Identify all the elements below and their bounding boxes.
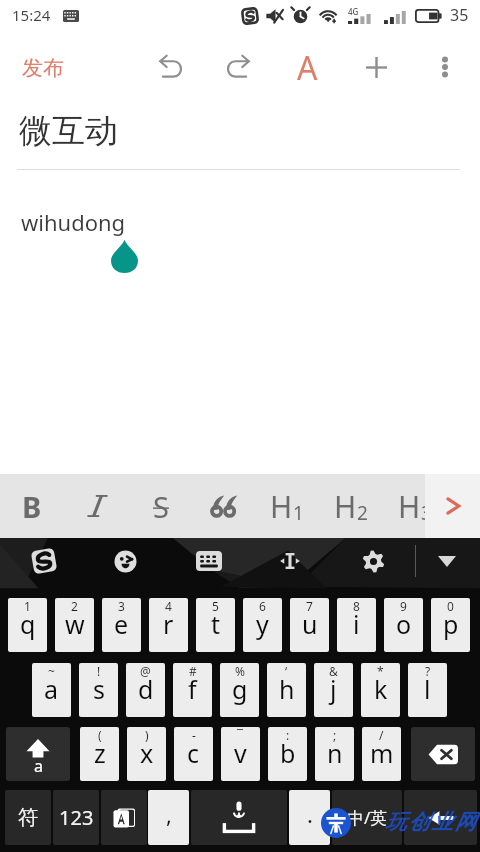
staticText: 玩创业网: [385, 809, 478, 835]
button[interactable]: Enter: [404, 790, 477, 845]
staticText: v: [234, 736, 247, 770]
button[interactable]: B: [2, 474, 62, 538]
button[interactable]: Redo: [214, 43, 262, 91]
button[interactable]: H: [385, 474, 445, 538]
button[interactable]: Space: [191, 790, 287, 845]
button[interactable]: H: [321, 474, 381, 538]
button[interactable]: 2: [55, 598, 94, 652]
staticText: e: [114, 607, 129, 641]
staticText: 3: [421, 500, 432, 526]
button[interactable]: %: [220, 663, 259, 717]
button[interactable]: 7: [290, 598, 329, 652]
staticText: z: [94, 736, 106, 770]
staticText: p: [443, 607, 459, 641]
button[interactable]: Switch language: [101, 790, 147, 845]
button[interactable]: ,: [148, 790, 189, 845]
staticText: 0: [447, 598, 454, 614]
button[interactable]: 符: [5, 790, 51, 845]
button[interactable]: /: [362, 727, 401, 781]
staticText: k: [374, 672, 388, 706]
button[interactable]: 1: [8, 598, 47, 652]
staticText: 中/英: [347, 806, 388, 829]
staticText: ‘: [285, 663, 288, 679]
button[interactable]: ¯: [221, 727, 260, 781]
button[interactable]: Delete: [411, 727, 475, 781]
button[interactable]: ): [127, 727, 166, 781]
staticText: 123: [59, 804, 94, 831]
button[interactable]: 5: [196, 598, 235, 652]
staticText: ,: [166, 799, 172, 829]
staticText: !: [97, 663, 101, 679]
button[interactable]: Add: [352, 43, 400, 91]
staticText: a: [34, 755, 43, 777]
button[interactable]: -: [174, 727, 213, 781]
staticText: 1: [24, 598, 31, 614]
button[interactable]: @: [126, 663, 165, 717]
button[interactable]: Undo: [147, 43, 195, 91]
button[interactable]: 4: [149, 598, 188, 652]
button[interactable]: :: [268, 727, 307, 781]
button[interactable]: [67, 474, 127, 538]
button[interactable]: ~: [32, 663, 71, 717]
button[interactable]: 123: [53, 790, 99, 845]
staticText: ;: [333, 727, 337, 743]
button[interactable]: More formats: [425, 474, 480, 538]
button[interactable]: S: [131, 474, 191, 538]
button[interactable]: Hide keyboard: [424, 538, 470, 584]
staticText: 8: [353, 598, 360, 614]
staticText: d: [138, 672, 154, 706]
button[interactable]: Emoji: [102, 538, 148, 584]
button[interactable]: Sogou input: [21, 538, 67, 584]
staticText: 5: [212, 598, 219, 614]
button[interactable]: Move cursor: [267, 538, 313, 584]
staticText: f: [188, 672, 197, 706]
staticText: q: [20, 607, 36, 641]
staticText: %: [235, 663, 245, 679]
button[interactable]: 9: [384, 598, 423, 652]
staticText: (: [98, 727, 102, 743]
button[interactable]: (: [80, 727, 119, 781]
button[interactable]: Shift: [6, 727, 70, 781]
button[interactable]: [194, 474, 254, 538]
button[interactable]: Text style: [283, 43, 331, 91]
staticText: wihudong: [21, 207, 126, 237]
button[interactable]: &: [314, 663, 353, 717]
staticText: 3: [118, 598, 125, 614]
button[interactable]: 6: [243, 598, 282, 652]
button[interactable]: .: [289, 790, 330, 845]
button[interactable]: 3: [102, 598, 141, 652]
staticText: r: [163, 607, 174, 641]
button[interactable]: Settings: [350, 538, 396, 584]
button[interactable]: 中/英: [332, 790, 402, 845]
button[interactable]: ?: [408, 663, 447, 717]
staticText: &: [329, 663, 338, 679]
staticText: o: [396, 607, 412, 641]
staticText: A: [297, 46, 318, 90]
staticText: u: [302, 607, 318, 641]
staticText: x: [140, 736, 154, 770]
button[interactable]: H: [257, 474, 317, 538]
staticText: l: [424, 672, 431, 706]
staticText: b: [280, 736, 296, 770]
button[interactable]: *: [361, 663, 400, 717]
staticText: n: [327, 736, 343, 770]
button[interactable]: ‘: [267, 663, 306, 717]
staticText: h: [279, 672, 295, 706]
button[interactable]: Keyboard layout: [186, 538, 232, 584]
staticText: 发布: [22, 55, 64, 81]
button[interactable]: 0: [431, 598, 470, 652]
button[interactable]: ;: [315, 727, 354, 781]
button[interactable]: 发布: [22, 55, 64, 81]
button[interactable]: 8: [337, 598, 376, 652]
button[interactable]: More options: [421, 43, 469, 91]
staticText: B: [22, 487, 42, 526]
staticText: 15:24: [12, 5, 51, 25]
button[interactable]: #: [173, 663, 212, 717]
staticText: a: [44, 672, 59, 706]
staticText: @: [140, 663, 151, 679]
staticText: i: [353, 607, 360, 641]
staticText: ): [145, 727, 149, 743]
staticText: ¯: [237, 727, 244, 743]
button[interactable]: !: [79, 663, 118, 717]
staticText: 1: [293, 500, 304, 526]
